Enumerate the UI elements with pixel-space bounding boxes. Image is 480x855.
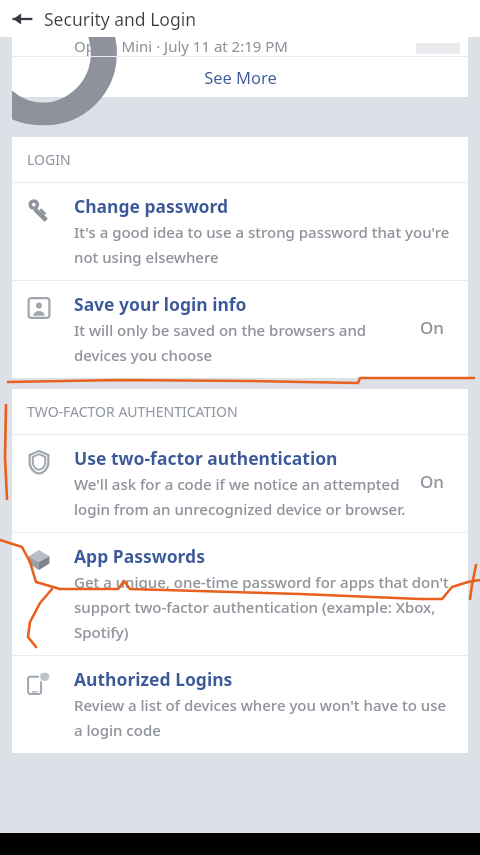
button[interactable]: Back <box>0 0 44 37</box>
staticText: On <box>420 470 444 493</box>
staticText: LOGIN <box>27 150 71 169</box>
staticText: Get a unique, one-time password for apps… <box>74 572 452 642</box>
button[interactable]: Save your login info <box>12 281 468 378</box>
button[interactable]: See More <box>12 57 468 97</box>
button[interactable]: Opera Mini · July 11 at 2:19 PM <box>12 37 468 56</box>
staticText: On <box>420 316 444 339</box>
button[interactable]: Change password <box>12 183 468 280</box>
staticText: Security and Login <box>44 7 197 31</box>
staticText: It will only be saved on the browsers an… <box>74 320 406 365</box>
button[interactable]: App Passwords <box>12 533 468 655</box>
staticText: Use two-factor authentication <box>74 446 338 470</box>
staticText: TWO-FACTOR AUTHENTICATION <box>27 402 238 421</box>
staticText: App Passwords <box>74 544 205 568</box>
staticText: Authorized Logins <box>74 667 233 691</box>
staticText: Change password <box>74 194 229 218</box>
staticText: Review a list of devices where you won't… <box>74 695 452 740</box>
staticText: Opera Mini · July 11 at 2:19 PM <box>74 37 288 56</box>
staticText: It's a good idea to use a strong passwor… <box>74 222 452 267</box>
staticText: See More <box>204 66 277 88</box>
staticText: Save your login info <box>74 292 247 316</box>
button[interactable]: Use two-factor authentication <box>12 435 468 532</box>
staticText: We'll ask for a code if we notice an att… <box>74 474 406 519</box>
button[interactable]: Authorized Logins <box>12 656 468 753</box>
